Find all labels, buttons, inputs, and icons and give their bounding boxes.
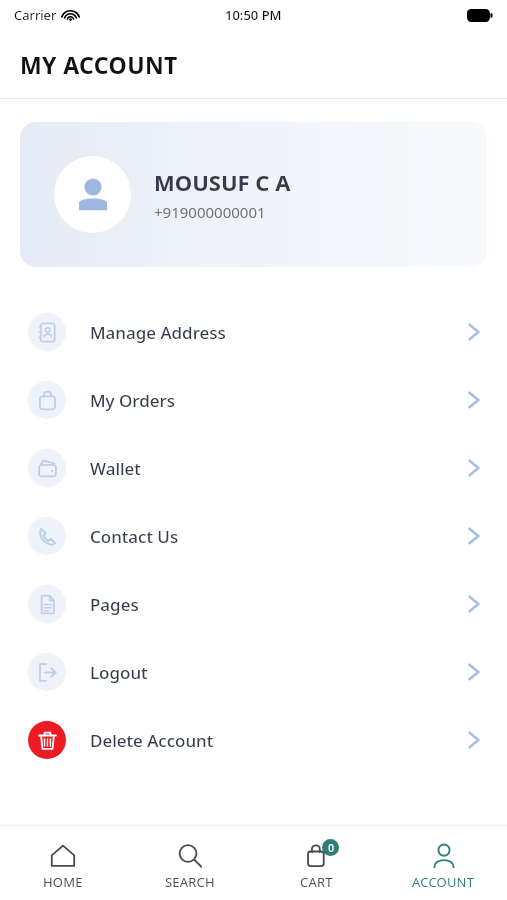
staticText: My Orders bbox=[90, 389, 175, 412]
staticText: 10:50 PM bbox=[225, 6, 282, 24]
button[interactable]: HOME bbox=[0, 836, 126, 891]
button[interactable]: Wallet bbox=[0, 434, 507, 502]
button[interactable]: SEARCH bbox=[126, 836, 253, 891]
button[interactable]: MOUSUF C A bbox=[20, 122, 487, 267]
staticText: Delete Account bbox=[90, 729, 214, 752]
staticText: Carrier bbox=[14, 6, 57, 24]
button[interactable]: ACCOUNT bbox=[380, 836, 507, 891]
staticText: MY ACCOUNT bbox=[20, 49, 178, 80]
button[interactable]: My Orders bbox=[0, 366, 507, 434]
staticText: +919000000001 bbox=[154, 202, 266, 222]
button[interactable]: Delete Account bbox=[0, 706, 507, 774]
staticText: ACCOUNT bbox=[412, 873, 475, 891]
staticText: SEARCH bbox=[165, 873, 215, 891]
staticText: CART bbox=[300, 873, 333, 891]
button[interactable]: 0 bbox=[253, 836, 380, 891]
staticText: Logout bbox=[90, 661, 148, 684]
button[interactable]: Manage Address bbox=[0, 298, 507, 366]
button[interactable]: Logout bbox=[0, 638, 507, 706]
staticText: Wallet bbox=[90, 457, 141, 480]
button[interactable]: Contact Us bbox=[0, 502, 507, 570]
staticText: Manage Address bbox=[90, 321, 226, 344]
button[interactable]: Pages bbox=[0, 570, 507, 638]
staticText: Contact Us bbox=[90, 525, 179, 548]
staticText: Pages bbox=[90, 593, 139, 616]
staticText: HOME bbox=[43, 873, 83, 891]
staticText: MOUSUF C A bbox=[154, 167, 291, 197]
staticText: 0 bbox=[328, 841, 334, 855]
